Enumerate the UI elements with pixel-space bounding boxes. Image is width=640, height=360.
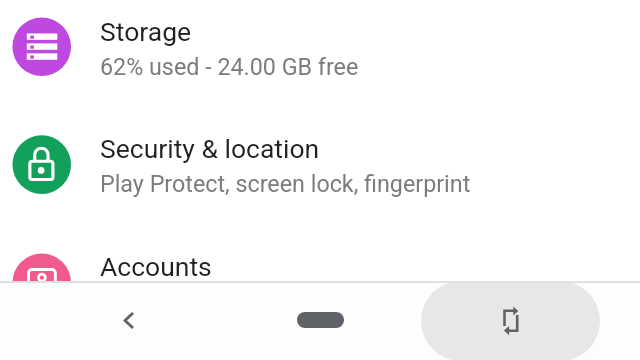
button[interactable]: Accounts [0,223,640,341]
staticText: Accounts [100,251,212,282]
staticText: Storage [100,16,192,47]
button[interactable]: Security & location [0,105,640,223]
button[interactable]: Home [286,296,354,344]
button[interactable]: Storage [0,0,640,106]
staticText: Play Protect, screen lock, fingerprint [100,170,471,197]
staticText: Google, Personal [100,288,276,315]
staticText: Security & location [100,133,320,164]
staticText: 62% used - 24.00 GB free [100,53,359,80]
button[interactable]: Rotate screen [421,281,600,360]
button[interactable]: Back [100,292,157,349]
